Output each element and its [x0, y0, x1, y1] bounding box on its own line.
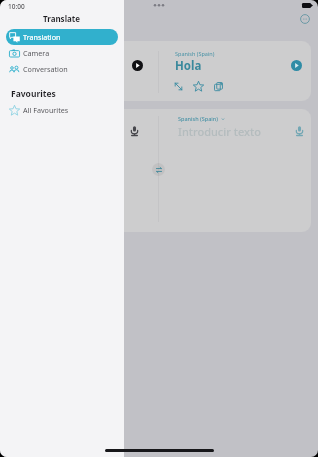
staticText: Spanish (Spain)	[178, 115, 219, 122]
staticText: Hola	[175, 58, 202, 74]
button[interactable]: Play original	[132, 60, 143, 71]
button[interactable]: Play translation	[291, 60, 302, 71]
button[interactable]: Camera	[6, 45, 118, 61]
button[interactable]: Translation	[6, 29, 118, 45]
staticText: Introducir texto	[178, 124, 261, 139]
button[interactable]: Favourite	[193, 81, 204, 92]
staticText: All Favourites	[23, 105, 69, 115]
staticText: Spanish (Spain)	[175, 50, 215, 57]
staticText: Favourites	[11, 88, 56, 100]
button[interactable]: More options	[300, 14, 310, 24]
button[interactable]: Conversation	[6, 61, 118, 77]
button[interactable]: All Favourites	[6, 102, 118, 118]
staticText: 10:00	[8, 2, 25, 11]
staticText: Conversation	[23, 64, 68, 74]
button[interactable]: Voice input	[130, 126, 139, 136]
button[interactable]: Swap languages	[152, 163, 165, 176]
staticText: Camera	[23, 48, 50, 58]
staticText: Translation	[23, 32, 61, 42]
button[interactable]: Speak	[295, 126, 304, 136]
button[interactable]: Expand	[173, 81, 184, 92]
button[interactable]: Copy	[213, 81, 224, 92]
staticText: Translate	[43, 13, 81, 24]
